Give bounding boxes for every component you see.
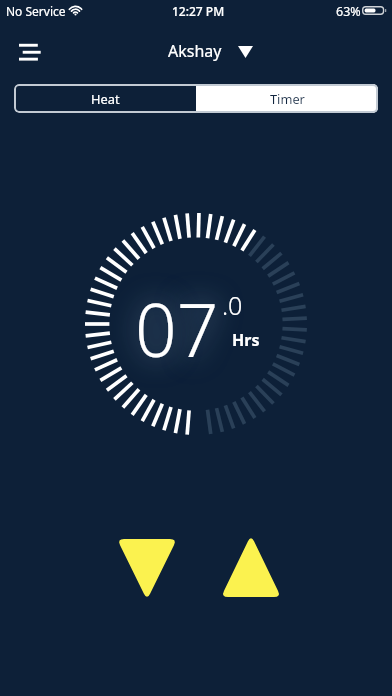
button[interactable]: Decrease	[117, 539, 177, 600]
staticText: Heat	[91, 90, 120, 107]
button[interactable]: Timer	[196, 84, 378, 113]
staticText: Akshay	[168, 40, 222, 62]
staticText: 12:27 PM	[172, 3, 225, 19]
button[interactable]: Menu	[8, 30, 52, 74]
staticText: 63%	[336, 3, 361, 20]
button[interactable]: Akshay	[160, 36, 260, 66]
staticText: 07	[135, 279, 219, 378]
button[interactable]: Heat	[14, 84, 196, 113]
staticText: Hrs	[232, 329, 260, 351]
staticText: No Service	[6, 3, 66, 19]
button[interactable]: Increase	[221, 535, 281, 597]
staticText: Timer	[270, 90, 305, 107]
staticText: .0	[222, 288, 243, 322]
